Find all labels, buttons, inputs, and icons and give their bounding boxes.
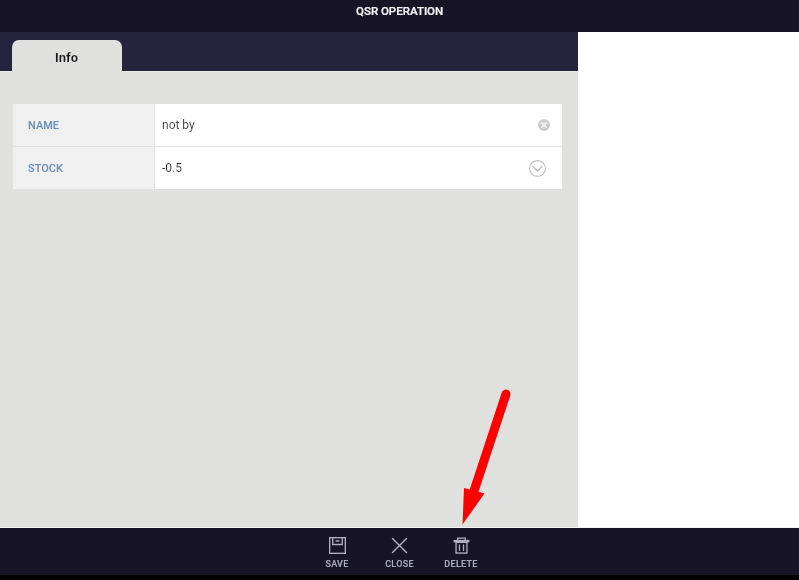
staticText: DELETE — [444, 559, 478, 570]
button[interactable]: Expand — [526, 157, 548, 179]
staticText: CLOSE — [385, 559, 414, 570]
button[interactable]: DELETE — [430, 527, 492, 575]
staticText: STOCK — [28, 162, 63, 175]
button[interactable]: Info — [12, 40, 122, 72]
staticText: not by — [162, 118, 195, 132]
button[interactable]: CLOSE — [368, 527, 430, 575]
staticText: Info — [55, 50, 79, 65]
staticText: -0.5 — [162, 161, 182, 175]
staticText: QSR OPERATION — [356, 4, 444, 17]
staticText: SAVE — [325, 559, 349, 570]
button[interactable]: Clear — [534, 115, 554, 135]
staticText: NAME — [28, 119, 60, 132]
button[interactable]: SAVE — [306, 527, 368, 575]
